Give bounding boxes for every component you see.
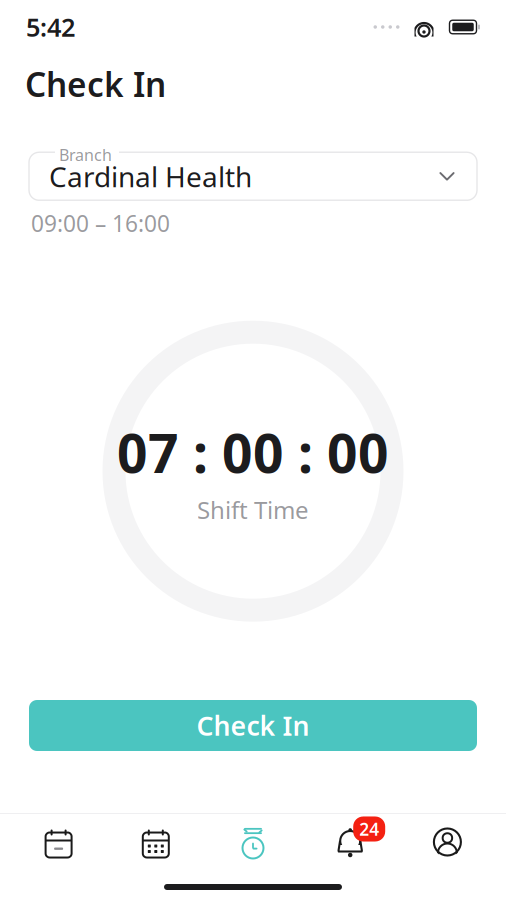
button[interactable]: Check In: [29, 700, 477, 751]
staticText: Branch: [59, 144, 112, 165]
staticText: 09:00 – 16:00: [31, 208, 170, 238]
staticText: 24: [359, 817, 379, 840]
staticText: 07 : 00 : 00: [117, 417, 389, 488]
button[interactable]: Check In: [204, 814, 302, 870]
button[interactable]: Calendar: [107, 814, 204, 870]
button[interactable]: Notifications, 24 new: [302, 814, 399, 870]
staticText: Check In: [25, 62, 166, 106]
staticText: Check In: [196, 708, 309, 743]
staticText: Shift Time: [197, 494, 309, 526]
button[interactable]: Profile: [399, 814, 496, 870]
staticText: Cardinal Health: [49, 158, 252, 195]
staticText: 5:42: [26, 10, 75, 44]
button[interactable]: Schedule: [10, 814, 107, 870]
button[interactable]: Branch: [29, 144, 477, 200]
